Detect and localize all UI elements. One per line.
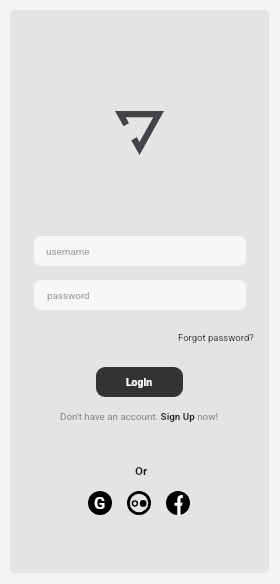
button[interactable]: password <box>34 280 246 310</box>
staticText: password <box>47 290 90 301</box>
button[interactable]: LogIn <box>96 367 183 397</box>
staticText: LogIn <box>126 376 153 388</box>
button[interactable]: Sign in with Facebook <box>166 491 190 515</box>
staticText: G <box>94 494 106 513</box>
staticText: Or <box>135 464 148 477</box>
button[interactable]: Don't have an account. Sign Up now! <box>60 411 219 422</box>
staticText: username <box>46 246 90 257</box>
button[interactable]: Sign in with Flickr <box>127 491 151 515</box>
button[interactable]: Sign in with Google <box>88 491 112 515</box>
button[interactable]: Forgot password? <box>162 327 254 347</box>
staticText: Don't have an account. Sign Up now! <box>60 411 219 422</box>
staticText: Forgot password? <box>178 332 254 343</box>
button[interactable]: username <box>34 236 246 266</box>
